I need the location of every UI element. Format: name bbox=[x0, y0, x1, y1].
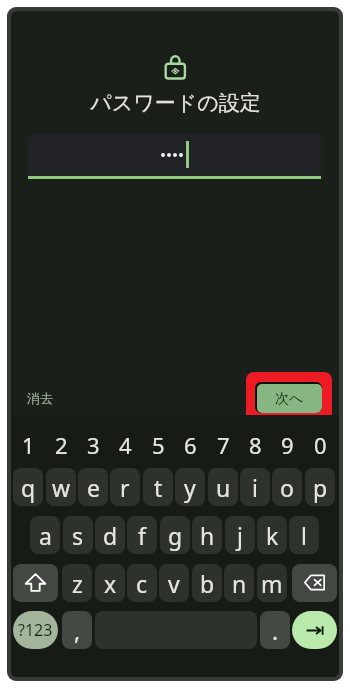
staticText: e bbox=[87, 472, 100, 503]
staticText: s bbox=[72, 520, 84, 551]
button[interactable]: s bbox=[63, 516, 93, 554]
button[interactable]: n bbox=[224, 564, 254, 602]
button[interactable]: p bbox=[305, 468, 335, 506]
staticText: g bbox=[168, 520, 183, 551]
button[interactable]: o bbox=[272, 468, 302, 506]
staticText: 4 bbox=[119, 430, 132, 460]
button[interactable]: i bbox=[240, 468, 270, 506]
staticText: 9 bbox=[281, 430, 294, 460]
button[interactable]: c bbox=[127, 564, 157, 602]
staticText: 2 bbox=[55, 430, 68, 460]
button[interactable]: r bbox=[110, 468, 140, 506]
button[interactable]: b bbox=[192, 564, 222, 602]
button[interactable]: x bbox=[95, 564, 125, 602]
button[interactable]: 消去 bbox=[22, 385, 58, 411]
button[interactable]: z bbox=[62, 564, 92, 602]
staticText: b bbox=[200, 568, 215, 599]
staticText: j bbox=[237, 520, 243, 551]
staticText: 6 bbox=[184, 430, 197, 460]
button[interactable]: Enter bbox=[292, 611, 337, 649]
button[interactable]: 3 bbox=[78, 429, 108, 461]
staticText: o bbox=[280, 472, 294, 503]
button[interactable]: t bbox=[143, 468, 173, 506]
button[interactable]: 0 bbox=[305, 429, 335, 461]
staticText: 8 bbox=[249, 430, 262, 460]
button[interactable]: Backspace bbox=[292, 564, 337, 602]
button[interactable]: 7 bbox=[208, 429, 238, 461]
button[interactable]: y bbox=[175, 468, 205, 506]
button[interactable]: q bbox=[13, 468, 43, 506]
button[interactable]: 1 bbox=[13, 429, 43, 461]
button[interactable]: 次へ bbox=[255, 382, 322, 413]
button[interactable]: w bbox=[46, 468, 76, 506]
staticText: , bbox=[74, 615, 81, 646]
button[interactable]: m bbox=[257, 564, 287, 602]
staticText: k bbox=[266, 520, 279, 551]
button[interactable]: 6 bbox=[175, 429, 205, 461]
staticText: 次へ bbox=[275, 390, 304, 408]
staticText: パスワードの設定 bbox=[90, 90, 261, 116]
button[interactable]: , bbox=[62, 611, 92, 649]
staticText: i bbox=[252, 472, 258, 503]
button[interactable]: l bbox=[289, 516, 319, 554]
staticText: v bbox=[168, 568, 180, 599]
staticText: p bbox=[313, 472, 328, 503]
staticText: w bbox=[52, 472, 71, 503]
staticText: q bbox=[21, 472, 36, 503]
button[interactable]: 5 bbox=[143, 429, 173, 461]
staticText: . bbox=[272, 615, 279, 646]
button[interactable]: g bbox=[160, 516, 190, 554]
button[interactable]: 2 bbox=[46, 429, 76, 461]
staticText: f bbox=[138, 520, 146, 551]
button[interactable]: Shift bbox=[13, 564, 58, 602]
staticText: h bbox=[200, 520, 215, 551]
staticText: c bbox=[136, 568, 148, 599]
staticText: 3 bbox=[87, 430, 100, 460]
staticText: n bbox=[232, 568, 247, 599]
staticText: a bbox=[39, 520, 52, 551]
button[interactable]: d bbox=[95, 516, 125, 554]
button[interactable]: k bbox=[257, 516, 287, 554]
staticText: 1 bbox=[22, 430, 35, 460]
staticText: m bbox=[261, 568, 283, 599]
staticText: x bbox=[104, 568, 117, 599]
staticText: ?123 bbox=[18, 619, 53, 641]
staticText: 5 bbox=[152, 430, 165, 460]
button[interactable]: f bbox=[127, 516, 157, 554]
staticText: d bbox=[103, 520, 118, 551]
button[interactable]: v bbox=[159, 564, 189, 602]
button[interactable]: e bbox=[78, 468, 108, 506]
button[interactable]: a bbox=[30, 516, 60, 554]
staticText: r bbox=[120, 472, 130, 503]
staticText: 7 bbox=[217, 430, 230, 460]
staticText: u bbox=[216, 472, 231, 503]
button[interactable]: j bbox=[225, 516, 255, 554]
button[interactable]: . bbox=[260, 611, 290, 649]
staticText: y bbox=[184, 472, 196, 503]
staticText: l bbox=[301, 520, 307, 551]
button[interactable]: 8 bbox=[240, 429, 270, 461]
staticText: z bbox=[72, 568, 83, 599]
button[interactable] bbox=[28, 133, 321, 176]
button[interactable]: h bbox=[192, 516, 222, 554]
button[interactable]: ?123 bbox=[13, 611, 58, 649]
staticText: 消去 bbox=[27, 390, 53, 406]
button[interactable]: 4 bbox=[110, 429, 140, 461]
button[interactable]: u bbox=[208, 468, 238, 506]
staticText: t bbox=[154, 472, 163, 503]
staticText: 0 bbox=[314, 430, 327, 460]
button[interactable]: 9 bbox=[272, 429, 302, 461]
